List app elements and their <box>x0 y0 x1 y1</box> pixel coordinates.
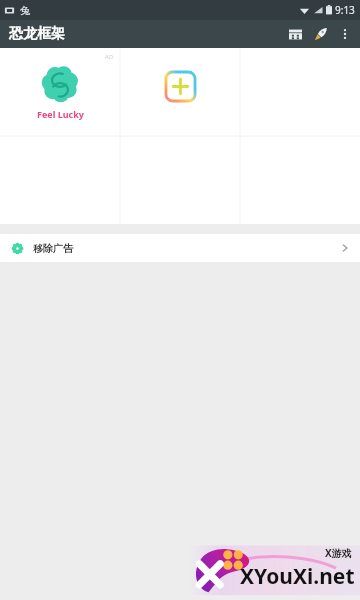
button[interactable]: AD <box>0 48 120 136</box>
staticText: Feel Lucky <box>37 108 84 120</box>
button[interactable]: Widgets <box>282 21 308 47</box>
staticText: 恐龙框架 <box>9 25 65 43</box>
staticText: AD <box>105 53 114 61</box>
button[interactable]: 移除广告 <box>0 234 360 262</box>
button[interactable]: Add <box>120 48 240 136</box>
button[interactable]: More options <box>334 23 356 45</box>
staticText: X游戏 <box>325 546 352 560</box>
staticText: 兔 <box>20 4 30 17</box>
staticText: 移除广告 <box>33 242 73 255</box>
staticText: XYouXi.net <box>240 562 355 591</box>
staticText: 9:13 <box>335 3 355 17</box>
button[interactable]: Boost <box>308 21 334 47</box>
